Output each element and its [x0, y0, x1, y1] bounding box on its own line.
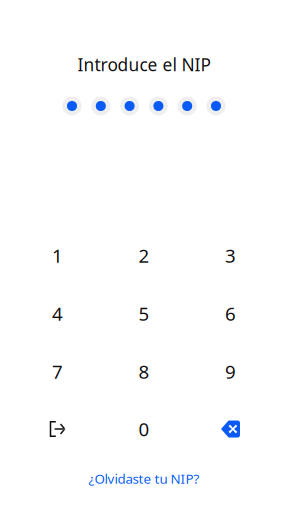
button[interactable]: 1 — [14, 226, 100, 284]
button[interactable]: 6 — [187, 284, 273, 342]
staticText: 3 — [225, 243, 236, 268]
button[interactable]: 4 — [14, 284, 100, 342]
button[interactable]: Salir — [14, 400, 100, 458]
staticText: 9 — [225, 359, 236, 384]
button[interactable]: 3 — [187, 226, 273, 284]
button[interactable]: 5 — [101, 284, 187, 342]
staticText: 8 — [138, 359, 149, 384]
staticText: 4 — [52, 301, 63, 326]
button[interactable]: 8 — [101, 342, 187, 400]
button[interactable]: ¿Olvidaste tu NIP? — [88, 469, 199, 487]
staticText: 0 — [138, 417, 149, 441]
staticText: 6 — [225, 301, 236, 326]
staticText: 5 — [138, 301, 149, 326]
staticText: 2 — [138, 243, 149, 268]
staticText: ¿Olvidaste tu NIP? — [88, 470, 199, 487]
staticText: Introduce el NIP — [77, 53, 210, 76]
button[interactable]: 0 — [101, 400, 187, 458]
button[interactable]: 2 — [101, 226, 187, 284]
staticText: 7 — [52, 359, 63, 384]
button[interactable]: Borrar — [187, 400, 273, 458]
button[interactable]: 9 — [187, 342, 273, 400]
staticText: 1 — [52, 243, 63, 268]
button[interactable]: 7 — [14, 342, 100, 400]
